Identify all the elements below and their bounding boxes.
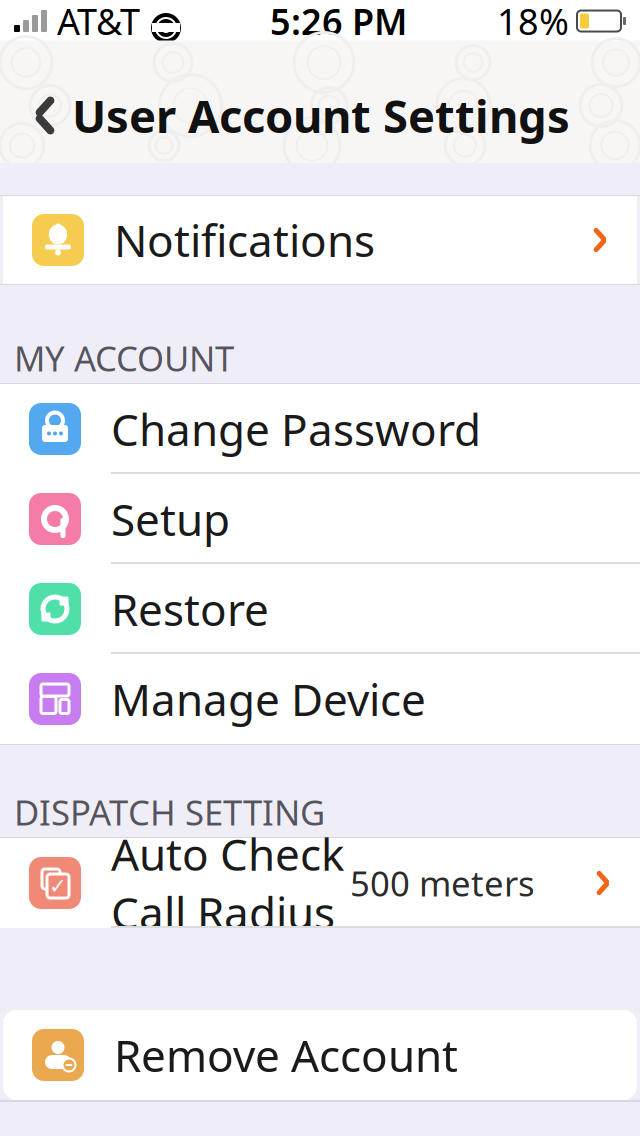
button[interactable]: Setup [0,474,640,564]
staticText: Manage Device [111,670,426,728]
staticText: Change Password [111,400,481,458]
staticText: Auto Check Call Radius [111,825,344,941]
button[interactable]: Restore [0,564,640,654]
button[interactable]: Manage Device [0,654,640,744]
staticText: 18% [497,0,569,45]
staticText: Setup [111,490,230,548]
staticText: Remove Account [114,1026,458,1084]
staticText: AT&T [57,0,140,45]
button[interactable]: ✓ [0,838,640,928]
staticText: 5:26 PM [270,0,407,45]
staticText: MY ACCOUNT [14,335,234,381]
staticText: Restore [111,580,269,638]
staticText: Notifications [114,211,375,269]
staticText: DISPATCH SETTING [14,789,325,835]
staticText: ✓ [49,874,67,898]
button[interactable]: Notifications [3,195,637,285]
button[interactable]: Back [18,85,72,145]
staticText: User Account Settings [72,85,570,146]
button[interactable]: Remove Account [3,1010,637,1100]
staticText: 500 meters [350,860,535,906]
button[interactable]: Change Password [0,384,640,474]
